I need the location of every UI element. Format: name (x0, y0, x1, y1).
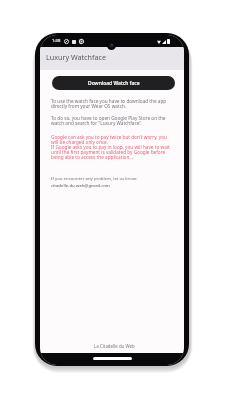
staticText: To use the watch face you have to downlo… (51, 98, 172, 109)
staticText: Google can ask you to pay twice but don'… (51, 134, 172, 160)
button[interactable]: Download Watch face (52, 76, 175, 90)
staticText: Download Watch face (88, 80, 140, 87)
staticText: citadelle.du.web@gmail.com (51, 182, 110, 188)
staticText: Luxury Watchface (46, 52, 107, 62)
staticText: To do so, you have to open Google Play S… (51, 115, 172, 126)
staticText: If you encounter any problem, let us kno… (51, 175, 138, 181)
other: Front camera (107, 41, 116, 50)
staticText: La Citadelle du Web (94, 343, 135, 349)
button[interactable]: citadelle.du.web@gmail.com (51, 182, 110, 188)
staticText: 1:38 (52, 38, 61, 44)
